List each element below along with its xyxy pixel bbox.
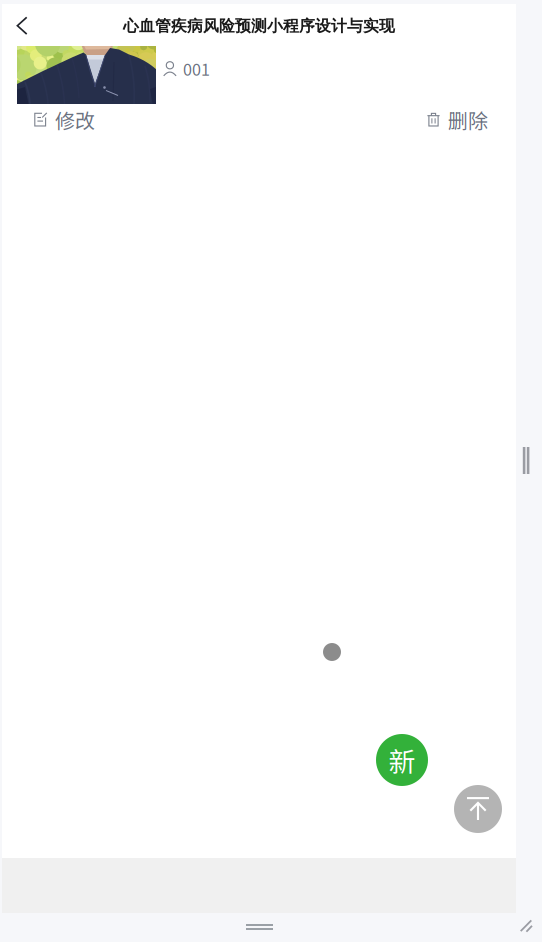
staticText: 删除: [448, 105, 488, 134]
button[interactable]: 删除: [417, 99, 498, 140]
staticText: 新: [388, 741, 415, 779]
staticText: 修改: [55, 105, 95, 134]
button[interactable]: 新: [376, 734, 428, 786]
staticText: 001: [183, 57, 210, 80]
button[interactable]: 修改: [24, 99, 105, 140]
button[interactable]: Back: [2, 4, 42, 48]
button[interactable]: Back to top: [454, 785, 502, 833]
staticText: 心血管疾病风险预测小程序设计与实现: [123, 16, 395, 36]
